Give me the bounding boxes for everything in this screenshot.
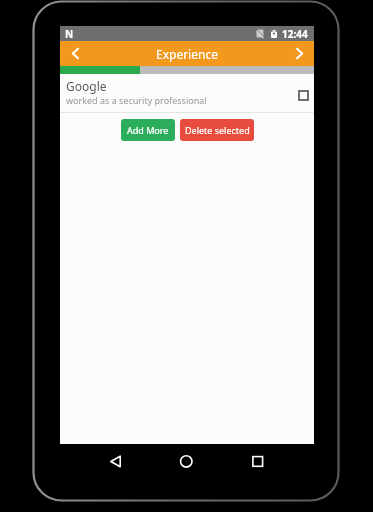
staticText: N: [65, 27, 74, 41]
button[interactable]: [284, 41, 314, 66]
staticText: 12:44: [282, 27, 308, 41]
button[interactable]: Delete selected: [180, 119, 254, 141]
button[interactable]: [60, 41, 90, 66]
staticText: Google: [66, 78, 107, 94]
staticText: Experience: [156, 46, 218, 62]
staticText: Add More: [127, 124, 169, 136]
button[interactable]: Add More: [121, 119, 175, 141]
button[interactable]: [298, 90, 309, 101]
staticText: Delete selected: [185, 124, 250, 136]
staticText: worked as a security professional: [66, 94, 207, 106]
button[interactable]: Google: [66, 78, 309, 106]
